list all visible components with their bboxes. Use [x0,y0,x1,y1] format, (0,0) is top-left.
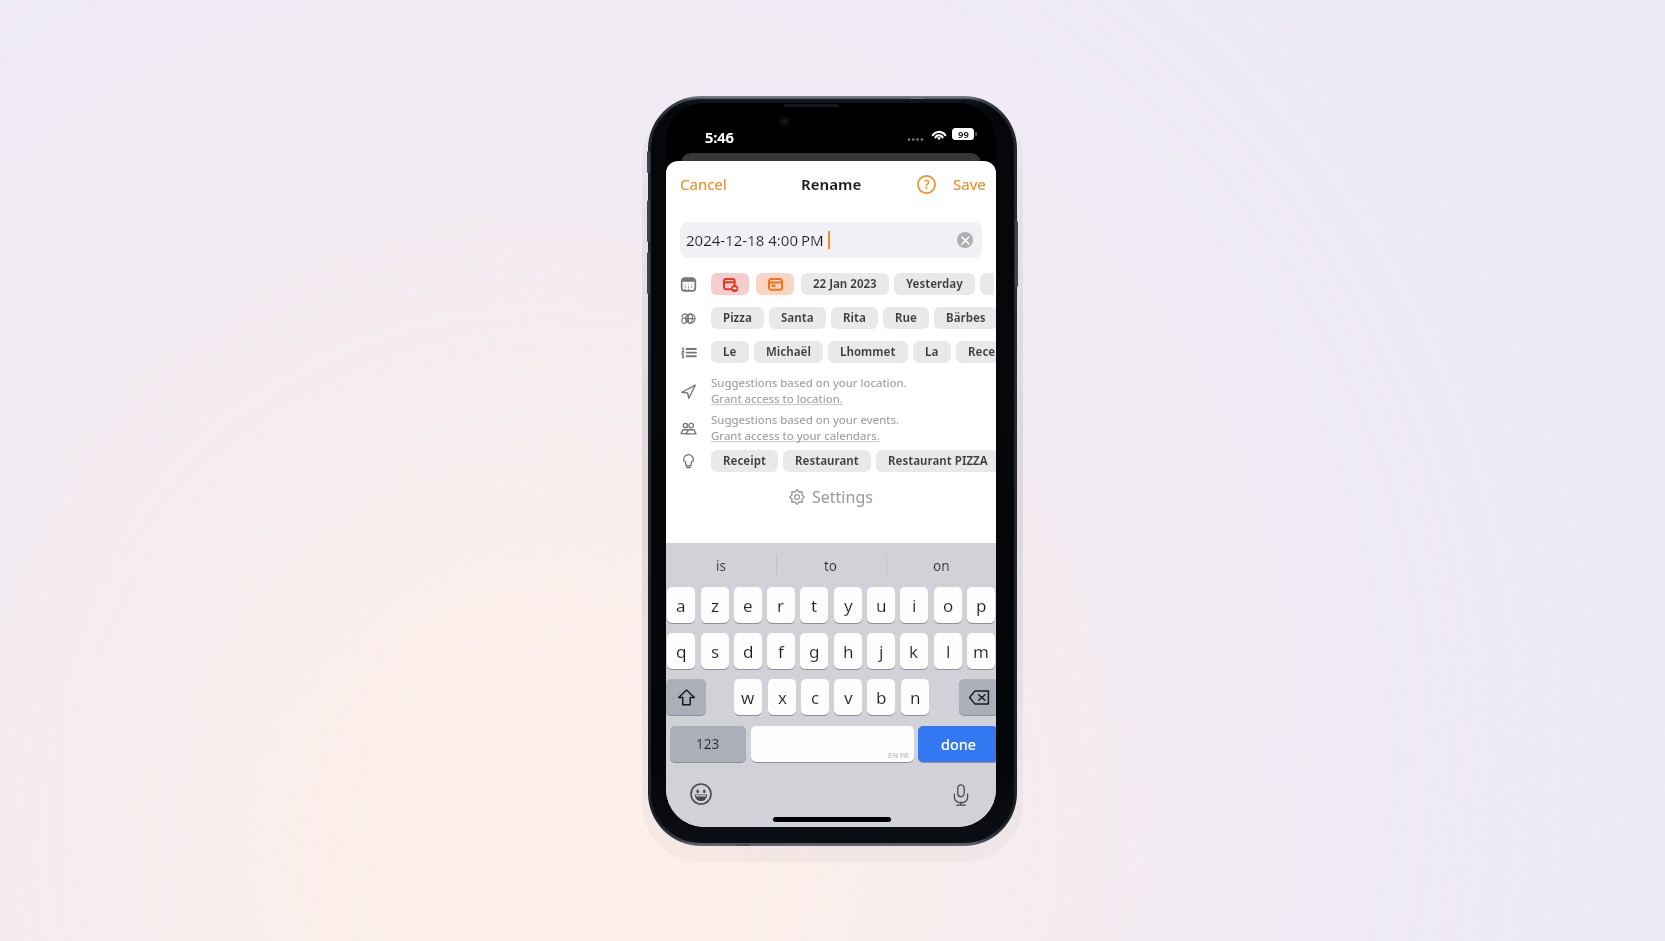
button[interactable]: a [667,587,695,623]
button[interactable]: Emoji keyboard [690,783,712,805]
staticText: to [824,557,838,575]
button[interactable]: Remove date [711,273,749,295]
staticText: Rue [895,310,917,326]
button[interactable]: Bärbes [934,307,996,329]
button[interactable]: Receipt [711,450,778,472]
button[interactable]: to [776,553,886,579]
staticText: y [844,594,853,617]
button[interactable]: 2024-12-18 4:00 [680,222,982,258]
staticText: Restaurant PIZZA [888,453,988,469]
button[interactable]: q [667,633,695,669]
staticText: u [876,594,887,617]
staticText: j [879,640,884,663]
staticText: 99 [958,128,969,140]
button[interactable]: Restaurant [783,450,871,472]
staticText: Suggestions based on your events. [711,412,899,428]
button[interactable]: Cancel [666,165,741,203]
button[interactable]: Le [711,341,749,363]
button[interactable]: More dates [980,273,994,295]
button[interactable]: b [867,679,895,715]
staticText: Receip [968,344,996,360]
staticText: Settings [812,486,873,508]
button[interactable]: g [800,633,828,669]
staticText: k [909,640,919,663]
staticText: 2024-12-18 4:00 [686,230,798,250]
staticText: v [844,686,853,709]
button[interactable]: Receip [956,341,996,363]
staticText: a [676,594,686,617]
button[interactable]: Help [911,169,953,200]
button[interactable]: Lhommet [828,341,908,363]
button[interactable]: l [934,633,962,669]
button[interactable]: o [934,587,962,623]
staticText: t [811,594,818,617]
staticText: Grant access to location. [711,391,843,407]
button[interactable]: Restaurant PIZZA [876,450,996,472]
button[interactable]: k [900,633,928,669]
staticText: Grant access to your calendars. [711,428,880,444]
staticText: f [778,640,784,663]
staticText: Bärbes [946,310,986,326]
staticText: Lhommet [840,344,896,360]
button[interactable]: x [768,679,796,715]
button[interactable]: 22 Jan 2023 [801,273,889,295]
button[interactable]: Rita [831,307,878,329]
button[interactable]: m [967,633,995,669]
staticText: w [741,686,755,709]
staticText: x [778,686,787,709]
button[interactable]: Settings [666,485,996,509]
staticText: o [943,594,954,617]
staticText: g [809,640,820,663]
button[interactable]: f [767,633,795,669]
staticText: q [676,640,687,663]
button[interactable]: Dictation [950,784,972,806]
button[interactable]: j [867,633,895,669]
button[interactable]: n [901,679,929,715]
button[interactable]: z [701,587,729,623]
button[interactable]: w [734,679,762,715]
button[interactable]: Backspace [959,679,996,715]
button[interactable]: Yesterday [894,273,975,295]
button[interactable]: Clear text [957,232,973,248]
staticText: 5:46 [705,127,734,147]
staticText: m [973,640,989,663]
button[interactable]: Grant access to your calendars. [711,428,880,444]
button[interactable]: is [666,553,776,579]
button[interactable]: Santa [769,307,826,329]
button[interactable]: done [918,726,996,762]
button[interactable]: h [834,633,862,669]
staticText: on [933,557,950,575]
button[interactable]: t [800,587,828,623]
button[interactable]: Shift [666,679,706,715]
button[interactable]: u [867,587,895,623]
button[interactable]: 123 [670,726,746,762]
button[interactable]: Pizza [711,307,764,329]
button[interactable]: c [801,679,829,715]
staticText: EN FR [888,750,909,760]
button[interactable]: Insert date [756,273,794,295]
button[interactable]: e [734,587,762,623]
button[interactable]: p [967,587,995,623]
button[interactable]: La [913,341,951,363]
staticText: r [777,594,785,617]
button[interactable]: d [734,633,762,669]
button[interactable]: Space [751,726,914,762]
staticText: Pizza [723,310,752,326]
staticText: s [711,640,720,663]
button[interactable]: Rue [883,307,929,329]
button[interactable]: s [701,633,729,669]
staticText: b [876,686,887,709]
staticText: Cancel [680,174,727,194]
staticText: d [743,640,754,663]
button[interactable]: on [886,553,996,579]
button[interactable]: Grant access to location. [711,391,843,407]
button[interactable]: Michaël [754,341,823,363]
staticText: Save [953,174,986,194]
button[interactable]: Save [953,165,996,203]
staticText: Le [723,344,737,360]
button[interactable]: y [834,587,862,623]
button[interactable]: r [767,587,795,623]
button[interactable]: i [900,587,928,623]
button[interactable]: v [834,679,862,715]
staticText: Suggestions based on your location. [711,375,907,391]
